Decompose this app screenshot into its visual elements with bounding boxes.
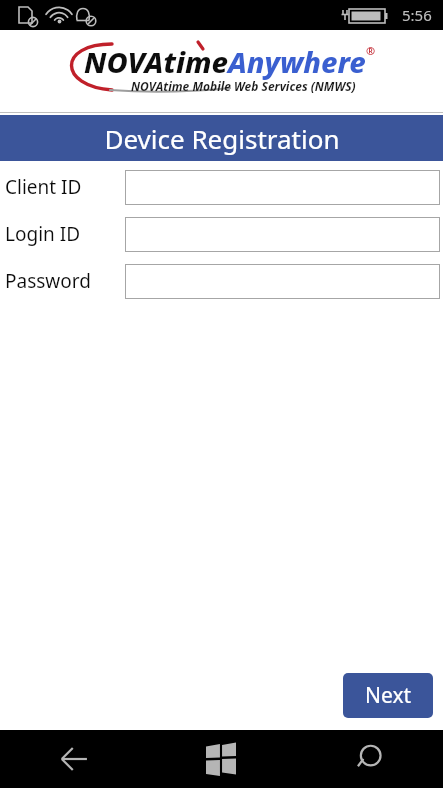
staticText: NOVAtime Mobile Web Services (NMWS) [131, 78, 356, 94]
staticText: ® [366, 43, 376, 58]
button[interactable]: Start [147, 730, 295, 788]
staticText: Client ID [5, 174, 125, 200]
staticText: Device Registration [104, 121, 340, 156]
button[interactable]: Next [343, 673, 433, 718]
button[interactable] [125, 217, 440, 252]
button[interactable]: Search [295, 730, 443, 788]
button[interactable] [125, 264, 440, 299]
staticText: NOVAtime [84, 42, 228, 81]
staticText: Password [5, 268, 125, 294]
staticText: 5:56 [402, 5, 432, 25]
staticText: Login ID [5, 221, 125, 247]
button[interactable] [125, 170, 440, 205]
staticText: Next [365, 681, 412, 710]
button[interactable]: Back [0, 730, 147, 788]
staticText: Anywhere [228, 42, 366, 81]
